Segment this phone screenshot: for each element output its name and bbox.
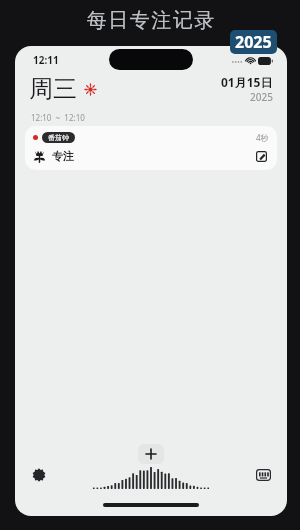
staticText: 2025	[250, 90, 273, 104]
button[interactable]: 番茄钟	[25, 126, 277, 170]
staticText: 12:11	[33, 53, 59, 67]
button[interactable]: 2025	[230, 30, 277, 54]
staticText: 专注	[52, 149, 74, 163]
staticText: 01月15日	[221, 74, 273, 90]
staticText: 周三	[29, 74, 77, 104]
staticText: 4秒	[256, 132, 269, 143]
staticText: 每日专注记录	[86, 8, 215, 33]
button[interactable]: Settings	[28, 464, 50, 486]
button[interactable]: Keyboard	[252, 464, 274, 486]
button[interactable]: Add	[138, 444, 164, 464]
button[interactable]: Edit	[253, 148, 269, 164]
staticText: 番茄钟	[48, 133, 69, 142]
staticText: 2025	[235, 31, 272, 53]
staticText: 12:10 ~ 12:10	[31, 112, 85, 123]
